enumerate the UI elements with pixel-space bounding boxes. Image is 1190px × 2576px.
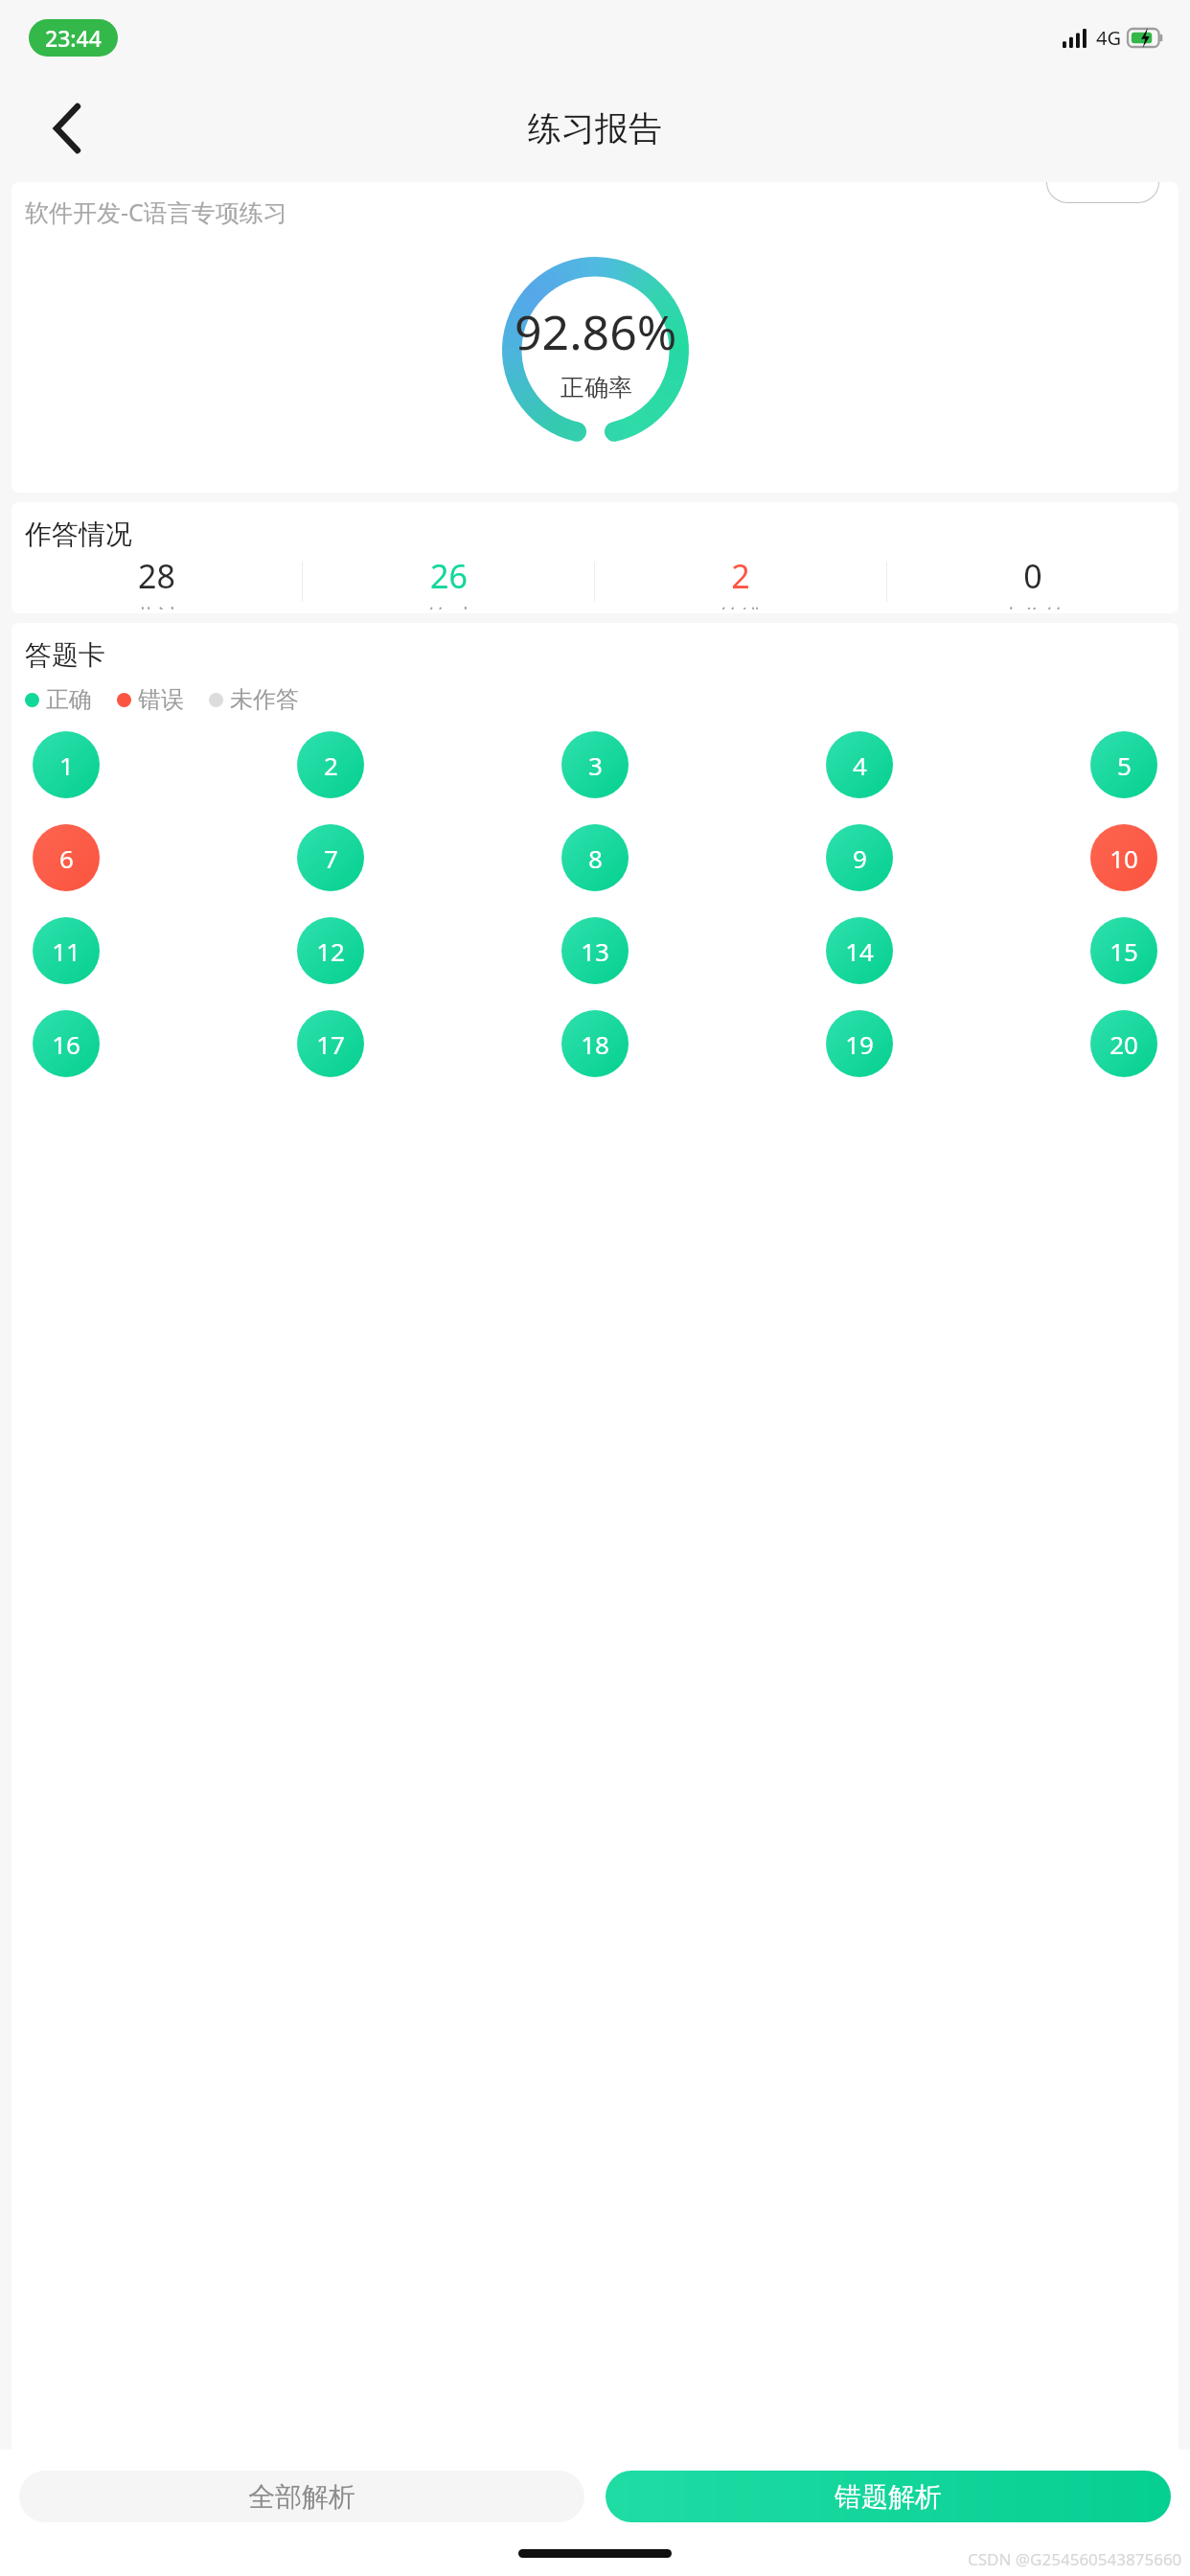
staticText: 0 (1023, 554, 1042, 598)
button[interactable]: 19 (826, 1010, 893, 1077)
staticText: 2 (324, 748, 338, 782)
staticText: 未作答 (230, 685, 299, 714)
button[interactable]: 5 (1090, 731, 1157, 798)
staticText: 错误 (138, 685, 184, 714)
staticText: 10 (1110, 841, 1138, 875)
staticText: 17 (316, 1027, 345, 1061)
button[interactable]: 17 (297, 1010, 364, 1077)
staticText: 28 (138, 554, 175, 598)
button[interactable]: 7 (297, 824, 364, 891)
button[interactable]: 2 (297, 731, 364, 798)
staticText: CSDN @G254560543875660 (968, 2548, 1182, 2570)
staticText: 答错 (719, 604, 763, 609)
staticText: 4G (1096, 25, 1121, 51)
button[interactable]: 6 (33, 824, 100, 891)
staticText: 13 (581, 934, 609, 968)
button[interactable]: 3 (561, 731, 629, 798)
staticText: 7 (324, 841, 338, 875)
staticText: 16 (52, 1027, 80, 1061)
staticText: 14 (845, 934, 874, 968)
staticText: 20 (1110, 1027, 1138, 1061)
staticText: 92.86% (515, 299, 677, 364)
button[interactable]: 8 (561, 824, 629, 891)
button[interactable]: 20 (1090, 1010, 1157, 1077)
staticText: 共计 (135, 604, 179, 609)
staticText: 12 (316, 934, 345, 968)
staticText: 正确 (46, 685, 92, 714)
staticText: 未作答 (1000, 604, 1066, 609)
staticText: 5 (1117, 748, 1132, 782)
staticText: 练习报告 (528, 107, 662, 149)
button[interactable] (1046, 182, 1159, 203)
staticText: 15 (1110, 934, 1138, 968)
button[interactable]: 18 (561, 1010, 629, 1077)
staticText: 全部解析 (248, 2480, 355, 2514)
staticText: 8 (588, 841, 603, 875)
staticText: 答题卡 (25, 638, 105, 672)
button[interactable]: 10 (1090, 824, 1157, 891)
staticText: 4 (853, 748, 867, 782)
staticText: 软件开发-C语言专项练习 (25, 195, 287, 228)
button[interactable]: 错题解析 (606, 2471, 1171, 2522)
staticText: 26 (430, 554, 468, 598)
staticText: 11 (52, 934, 80, 968)
staticText: 2 (731, 554, 750, 598)
staticText: 6 (59, 841, 74, 875)
staticText: 正确率 (561, 373, 632, 402)
button[interactable]: 9 (826, 824, 893, 891)
staticText: 3 (588, 748, 603, 782)
button[interactable]: 4 (826, 731, 893, 798)
button[interactable]: 14 (826, 917, 893, 984)
button[interactable]: 1 (33, 731, 100, 798)
staticText: 9 (853, 841, 867, 875)
button[interactable]: 12 (297, 917, 364, 984)
button[interactable]: 16 (33, 1010, 100, 1077)
button[interactable]: Back (33, 94, 102, 163)
button[interactable]: 15 (1090, 917, 1157, 984)
button[interactable]: 全部解析 (19, 2471, 584, 2522)
staticText: 23:44 (45, 23, 102, 53)
staticText: 答对 (426, 604, 470, 609)
staticText: 1 (59, 748, 74, 782)
button[interactable]: 13 (561, 917, 629, 984)
staticText: 作答情况 (25, 517, 132, 551)
staticText: 错题解析 (835, 2480, 942, 2514)
button[interactable]: 11 (33, 917, 100, 984)
staticText: 18 (581, 1027, 609, 1061)
staticText: 19 (845, 1027, 874, 1061)
